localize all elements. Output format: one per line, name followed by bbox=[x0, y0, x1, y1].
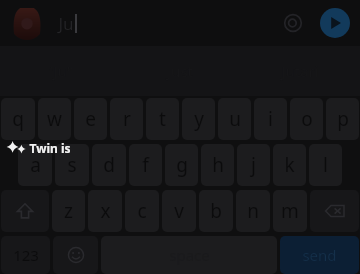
staticText: q bbox=[12, 106, 24, 132]
staticText: z bbox=[64, 198, 73, 224]
staticText: m bbox=[281, 198, 299, 224]
button[interactable]: Backspace bbox=[310, 190, 359, 232]
staticText: c bbox=[137, 198, 147, 224]
button[interactable]: s bbox=[55, 144, 89, 186]
button[interactable]: Send bbox=[320, 8, 350, 38]
staticText: h bbox=[212, 152, 224, 178]
staticText: v bbox=[174, 198, 184, 224]
staticText: t bbox=[159, 106, 166, 132]
staticText: i bbox=[268, 106, 273, 132]
button[interactable]: send bbox=[280, 236, 359, 274]
button[interactable]: p bbox=[326, 98, 359, 140]
button[interactable]: o bbox=[290, 98, 323, 140]
staticText: u bbox=[229, 106, 241, 132]
staticText: e bbox=[85, 106, 96, 132]
staticText: d bbox=[103, 152, 115, 178]
button[interactable]: Emoji bbox=[53, 236, 98, 274]
button[interactable]: Profile photo bbox=[10, 6, 44, 40]
button[interactable]: w bbox=[38, 98, 71, 140]
staticText: a bbox=[30, 152, 41, 178]
staticText: g bbox=[176, 152, 188, 178]
staticText: 123 bbox=[13, 245, 39, 265]
button[interactable]: q bbox=[1, 98, 35, 140]
button[interactable]: b bbox=[199, 190, 233, 232]
button[interactable]: Shift bbox=[1, 190, 49, 232]
staticText: b bbox=[210, 198, 222, 224]
button[interactable]: g bbox=[165, 144, 198, 186]
button[interactable]: a bbox=[18, 144, 52, 186]
staticText: f bbox=[142, 152, 149, 178]
staticText: n bbox=[247, 198, 259, 224]
button[interactable]: k bbox=[273, 144, 306, 186]
staticText: o bbox=[301, 106, 313, 132]
staticText: x bbox=[100, 198, 111, 224]
staticText: send bbox=[302, 245, 337, 265]
staticText: k bbox=[284, 152, 295, 178]
staticText: l bbox=[323, 152, 328, 178]
button[interactable]: m bbox=[273, 190, 307, 232]
button[interactable]: Mention bbox=[278, 8, 308, 38]
staticText: p bbox=[337, 106, 349, 132]
staticText: Ju bbox=[58, 12, 74, 35]
staticText: y bbox=[194, 106, 204, 132]
button[interactable]: y bbox=[182, 98, 215, 140]
staticText: r bbox=[123, 106, 131, 132]
staticText: j bbox=[251, 152, 256, 178]
staticText: s bbox=[67, 152, 77, 178]
staticText: Twin is bbox=[29, 140, 71, 156]
staticText: w bbox=[47, 106, 62, 132]
button[interactable]: e bbox=[74, 98, 107, 140]
button[interactable]: d bbox=[92, 144, 126, 186]
button[interactable]: h bbox=[201, 144, 234, 186]
button[interactable]: Twin is bbox=[6, 139, 71, 157]
